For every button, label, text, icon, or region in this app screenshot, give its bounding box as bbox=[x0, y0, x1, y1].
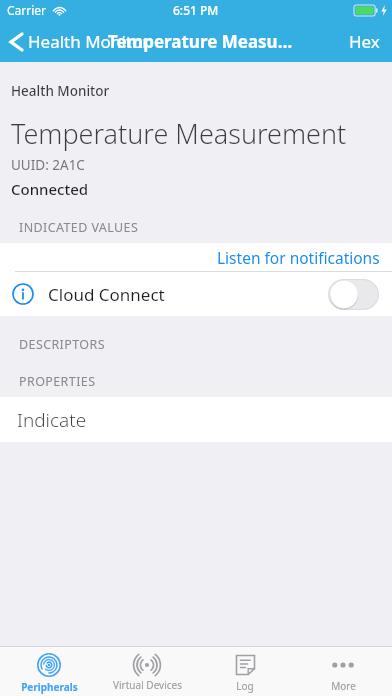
button[interactable]: Info bbox=[0, 272, 392, 316]
staticText: INDICATED VALUES bbox=[19, 219, 139, 236]
staticText: UUID: 2A1C bbox=[11, 156, 85, 174]
staticText: Hex bbox=[349, 30, 380, 53]
button[interactable]: Indicate bbox=[0, 397, 392, 442]
staticText: Log bbox=[236, 679, 254, 693]
staticText: PROPERTIES bbox=[19, 373, 96, 390]
button[interactable]: Cloud Connect toggle bbox=[328, 279, 379, 310]
button[interactable]: Hex bbox=[337, 22, 392, 61]
button[interactable]: Log bbox=[196, 647, 294, 696]
staticText: More bbox=[331, 679, 356, 693]
button[interactable]: Peripherals bbox=[0, 647, 98, 696]
staticText: Connected bbox=[11, 179, 89, 199]
staticText: Temperature Measure… bbox=[105, 30, 295, 53]
staticText: Carrier bbox=[7, 2, 47, 18]
staticText: Health Monitor bbox=[11, 82, 110, 100]
staticText: Indicate bbox=[17, 407, 87, 433]
staticText: Listen for notifications bbox=[217, 247, 380, 268]
staticText: Temperature Measurement bbox=[11, 115, 347, 152]
button[interactable]: Info bbox=[12, 283, 34, 305]
staticText: DESCRIPTORS bbox=[19, 336, 105, 353]
staticText: Health Monitor bbox=[28, 30, 150, 53]
staticText: Cloud Connect bbox=[48, 283, 165, 306]
staticText: Peripherals bbox=[21, 680, 78, 694]
button[interactable]: Virtual Devices bbox=[98, 647, 196, 696]
button[interactable]: Health Monitor bbox=[0, 26, 156, 57]
staticText: 6:51 PM bbox=[173, 2, 219, 18]
staticText: Virtual Devices bbox=[113, 678, 182, 692]
button[interactable]: More bbox=[294, 647, 392, 696]
button[interactable]: Listen for notifications bbox=[0, 243, 392, 271]
